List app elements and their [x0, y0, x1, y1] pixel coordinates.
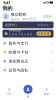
staticText: 我 [26, 95, 29, 98]
button[interactable]: 收藏与卡包 [0, 48, 56, 57]
staticText: 收藏与卡包 [8, 50, 28, 54]
button[interactable]: 我 [19, 85, 37, 98]
button[interactable]: 微信昵称 [0, 11, 56, 21]
staticText: 开通享 6 项专属权益 [9, 33, 33, 39]
staticText: 9:41 [3, 0, 10, 5]
staticText: 朋友圈动态 [8, 59, 28, 63]
button[interactable]: 消息 [0, 87, 19, 95]
staticText: 消息 [6, 92, 12, 95]
staticText: 微信昵称 [11, 12, 27, 17]
staticText: 立即开通 [38, 32, 50, 35]
staticText: 服务与支付 [8, 41, 28, 45]
button[interactable]: 服务与支付 [0, 39, 56, 48]
button[interactable]: 我的 [37, 87, 56, 95]
button[interactable]: 会员中心 [0, 21, 56, 28]
staticText: 微信号: wxid_8h2k [11, 17, 36, 21]
button[interactable]: 尊享会员 [0, 30, 56, 37]
staticText: 查看权益 › [37, 23, 51, 27]
staticText: 我的 [44, 92, 50, 95]
staticText: 我的 [3, 5, 13, 11]
staticText: 尊享会员 [9, 28, 21, 32]
button[interactable]: 朋友圈动态 [0, 57, 56, 66]
button[interactable]: 设置与隐私 [0, 66, 56, 75]
staticText: 会员中心 [5, 23, 17, 27]
staticText: 设置与隐私 [8, 68, 28, 72]
staticText: 已实名 [43, 15, 52, 18]
